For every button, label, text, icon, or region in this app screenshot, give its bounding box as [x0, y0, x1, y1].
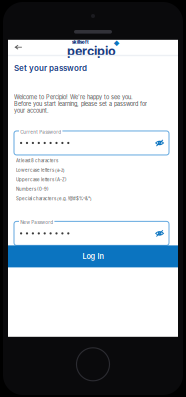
staticText: skillsoft: [72, 40, 89, 45]
staticText: Lowercase letters (a-z): [16, 167, 65, 173]
staticText: New Password: [20, 220, 53, 225]
staticText: ◆: [113, 40, 119, 47]
staticText: Special characters (e.g. !@#$%^&*): [16, 196, 92, 201]
staticText: Log In: [82, 252, 103, 261]
button[interactable]: Show password: [153, 226, 166, 240]
button[interactable]: Back: [11, 41, 25, 54]
button[interactable]: Show password: [153, 136, 166, 150]
staticText: Numbers (0-9): [16, 186, 49, 192]
staticText: At least 8 characters: [16, 158, 58, 163]
staticText: Welcome to Percipio! We're happy to see …: [14, 94, 147, 114]
staticText: Current Password: [20, 129, 61, 135]
staticText: percipio: [67, 43, 116, 59]
staticText: Uppercase letters (A-Z): [16, 177, 67, 182]
staticText: Set your password: [14, 63, 87, 73]
button[interactable]: Log In: [8, 245, 178, 267]
